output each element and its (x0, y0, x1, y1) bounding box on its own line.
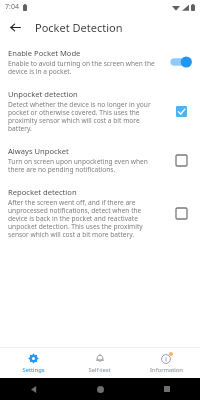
button[interactable]: Always Unpocket (0, 144, 200, 176)
button[interactable]: Self-test (66, 348, 133, 378)
staticText: Enable Pocket Mode (8, 48, 81, 58)
button[interactable]: Unpocket detection (0, 87, 200, 135)
staticText: Self-test (88, 366, 111, 374)
button[interactable]: Unchecked checkbox (176, 155, 187, 166)
staticText: Turn on screen upon unpocketing even whe… (8, 157, 162, 174)
staticText: Repocket detection (8, 187, 77, 197)
staticText: Information (150, 366, 183, 374)
staticText: Always Unpocket (8, 146, 69, 156)
button[interactable]: Unchecked checkbox (176, 208, 187, 219)
staticText: Settings (22, 366, 45, 374)
staticText: Unpocket detection (8, 89, 78, 99)
button[interactable]: Enable Pocket Mode (0, 46, 200, 78)
button[interactable]: Back (25, 381, 41, 397)
button[interactable]: Repocket detection (0, 185, 200, 241)
staticText: After the screen went off, and if there … (8, 198, 162, 239)
button[interactable]: Recent apps (159, 381, 175, 397)
staticText: Enable to avoid turning on the screen wh… (8, 59, 162, 76)
button[interactable]: Checked checkbox (176, 106, 187, 117)
staticText: 7:04 (5, 2, 19, 12)
staticText: Pocket Detection (35, 20, 123, 35)
button[interactable]: Information (133, 348, 200, 378)
button[interactable]: Settings (0, 348, 66, 378)
button[interactable]: Back (4, 16, 26, 38)
button[interactable]: Home (92, 381, 108, 397)
button[interactable]: Enable Pocket Mode toggle (169, 55, 193, 69)
staticText: Detect whether the device is no longer i… (8, 100, 162, 133)
